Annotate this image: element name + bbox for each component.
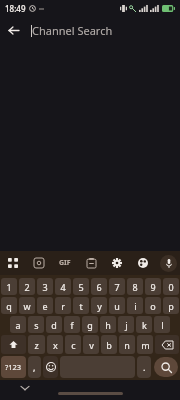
staticText: ?123 xyxy=(5,362,22,372)
staticText: a xyxy=(15,319,21,331)
staticText: y xyxy=(97,300,102,312)
button[interactable]: i xyxy=(127,297,143,314)
staticText: r xyxy=(61,300,65,312)
button[interactable]: d xyxy=(46,316,62,333)
button[interactable]: 5 xyxy=(73,278,89,295)
button[interactable]: Emoji xyxy=(43,356,58,378)
button[interactable]: Apps xyxy=(0,251,26,275)
staticText: 2 xyxy=(24,281,30,293)
staticText: j xyxy=(125,319,128,331)
button[interactable]: 9 xyxy=(145,278,161,295)
button[interactable]: Settings xyxy=(104,251,130,275)
button[interactable]: 0 xyxy=(163,278,179,295)
button[interactable]: GIF xyxy=(52,251,78,275)
staticText: 18:49 xyxy=(5,3,26,14)
staticText: 8 xyxy=(132,281,138,293)
staticText: z xyxy=(34,339,39,351)
button[interactable]: b xyxy=(101,335,117,354)
button[interactable]: g xyxy=(82,316,98,333)
button[interactable]: w xyxy=(19,297,35,314)
staticText: 3 xyxy=(42,281,48,293)
staticText: c xyxy=(71,339,76,351)
button[interactable]: Back xyxy=(0,17,26,43)
button[interactable]: 4 xyxy=(55,278,71,295)
staticText: l xyxy=(161,319,164,331)
button[interactable]: p xyxy=(163,297,179,314)
staticText: , xyxy=(33,361,36,373)
staticText: s xyxy=(34,319,39,331)
staticText: n xyxy=(124,339,130,351)
button[interactable]: Search xyxy=(154,357,178,377)
staticText: x xyxy=(53,339,58,351)
button[interactable]: Theme xyxy=(130,251,156,275)
button[interactable]: ?123 xyxy=(1,356,26,378)
button[interactable]: Shift xyxy=(1,335,26,354)
button[interactable]: u xyxy=(109,297,125,314)
staticText: o xyxy=(150,300,156,312)
button[interactable]: q xyxy=(1,297,17,314)
button[interactable]: n xyxy=(119,335,135,354)
button[interactable]: . xyxy=(137,356,151,378)
button[interactable]: 2 xyxy=(19,278,35,295)
staticText: f xyxy=(70,319,74,331)
staticText: p xyxy=(168,300,174,312)
button[interactable]: Stickers xyxy=(26,251,52,275)
staticText: g xyxy=(87,319,93,331)
button[interactable]: j xyxy=(118,316,134,333)
button[interactable]: o xyxy=(145,297,161,314)
button[interactable]: Clipboard xyxy=(78,251,104,275)
button[interactable]: t xyxy=(73,297,89,314)
staticText: v xyxy=(89,339,94,351)
button[interactable]: e xyxy=(37,297,53,314)
staticText: 1 xyxy=(6,281,12,293)
staticText: e xyxy=(42,300,48,312)
button[interactable]: 1 xyxy=(1,278,17,295)
button[interactable]: z xyxy=(28,335,45,354)
staticText: q xyxy=(6,300,12,312)
button[interactable]: f xyxy=(64,316,80,333)
button[interactable]: m xyxy=(137,335,153,354)
button[interactable]: Backspace xyxy=(155,335,179,354)
button[interactable]: l xyxy=(154,316,170,333)
button[interactable]: a xyxy=(10,316,26,333)
staticText: b xyxy=(106,339,112,351)
staticText: 4 xyxy=(60,281,66,293)
staticText: GIF xyxy=(59,258,71,268)
button[interactable]: x xyxy=(47,335,63,354)
button[interactable]: h xyxy=(100,316,116,333)
button[interactable]: k xyxy=(136,316,152,333)
staticText: k xyxy=(142,319,147,331)
staticText: 6 xyxy=(96,281,102,293)
staticText: 5 xyxy=(78,281,84,293)
button[interactable]: r xyxy=(55,297,71,314)
button[interactable]: y xyxy=(91,297,107,314)
button[interactable]: 8 xyxy=(127,278,143,295)
button[interactable]: c xyxy=(65,335,81,354)
staticText: t xyxy=(79,300,83,312)
staticText: w xyxy=(23,300,31,312)
button[interactable]: v xyxy=(83,335,99,354)
button[interactable]: Voice input xyxy=(156,251,180,275)
button[interactable]: 7 xyxy=(109,278,125,295)
button[interactable]: , xyxy=(28,356,41,378)
staticText: 0 xyxy=(168,281,174,293)
staticText: d xyxy=(51,319,57,331)
button[interactable]: 3 xyxy=(37,278,53,295)
staticText: 7 xyxy=(114,281,120,293)
staticText: u xyxy=(114,300,120,312)
staticText: Channel Search xyxy=(32,23,113,38)
staticText: . xyxy=(143,361,146,373)
button[interactable]: 6 xyxy=(91,278,107,295)
staticText: m xyxy=(141,339,150,351)
staticText: i xyxy=(134,300,137,312)
button[interactable]: s xyxy=(28,316,44,333)
button[interactable]: Hide keyboard xyxy=(18,381,32,395)
staticText: 9 xyxy=(150,281,156,293)
staticText: h xyxy=(105,319,111,331)
